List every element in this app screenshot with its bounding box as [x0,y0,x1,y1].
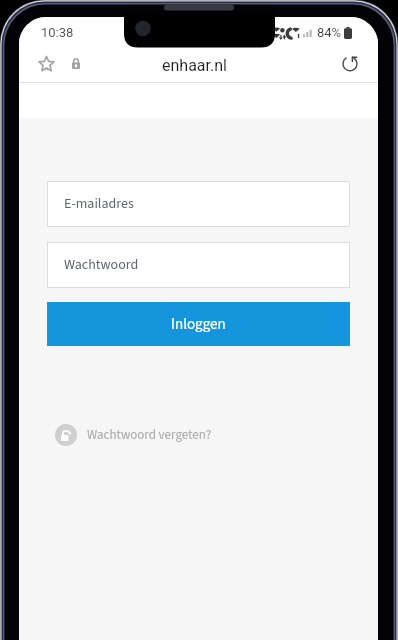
staticText: 10:38 [41,25,74,40]
button[interactable]: Site information [65,54,87,76]
button[interactable]: Wachtwoord vergeten? [55,424,212,446]
staticText: Inloggen [171,314,226,335]
button[interactable]: Bookmark [33,52,59,78]
button[interactable]: Wachtwoord [47,242,350,288]
staticText: Wachtwoord [64,255,139,275]
button[interactable]: Inloggen [47,302,350,346]
staticText: Wachtwoord vergeten? [87,426,212,445]
staticText: enhaar.nl [162,56,227,75]
button[interactable]: E-mailadres [47,181,350,227]
staticText: E-mailadres [64,194,134,214]
button[interactable]: Reload page [336,51,364,79]
staticText: 84% [317,25,342,40]
